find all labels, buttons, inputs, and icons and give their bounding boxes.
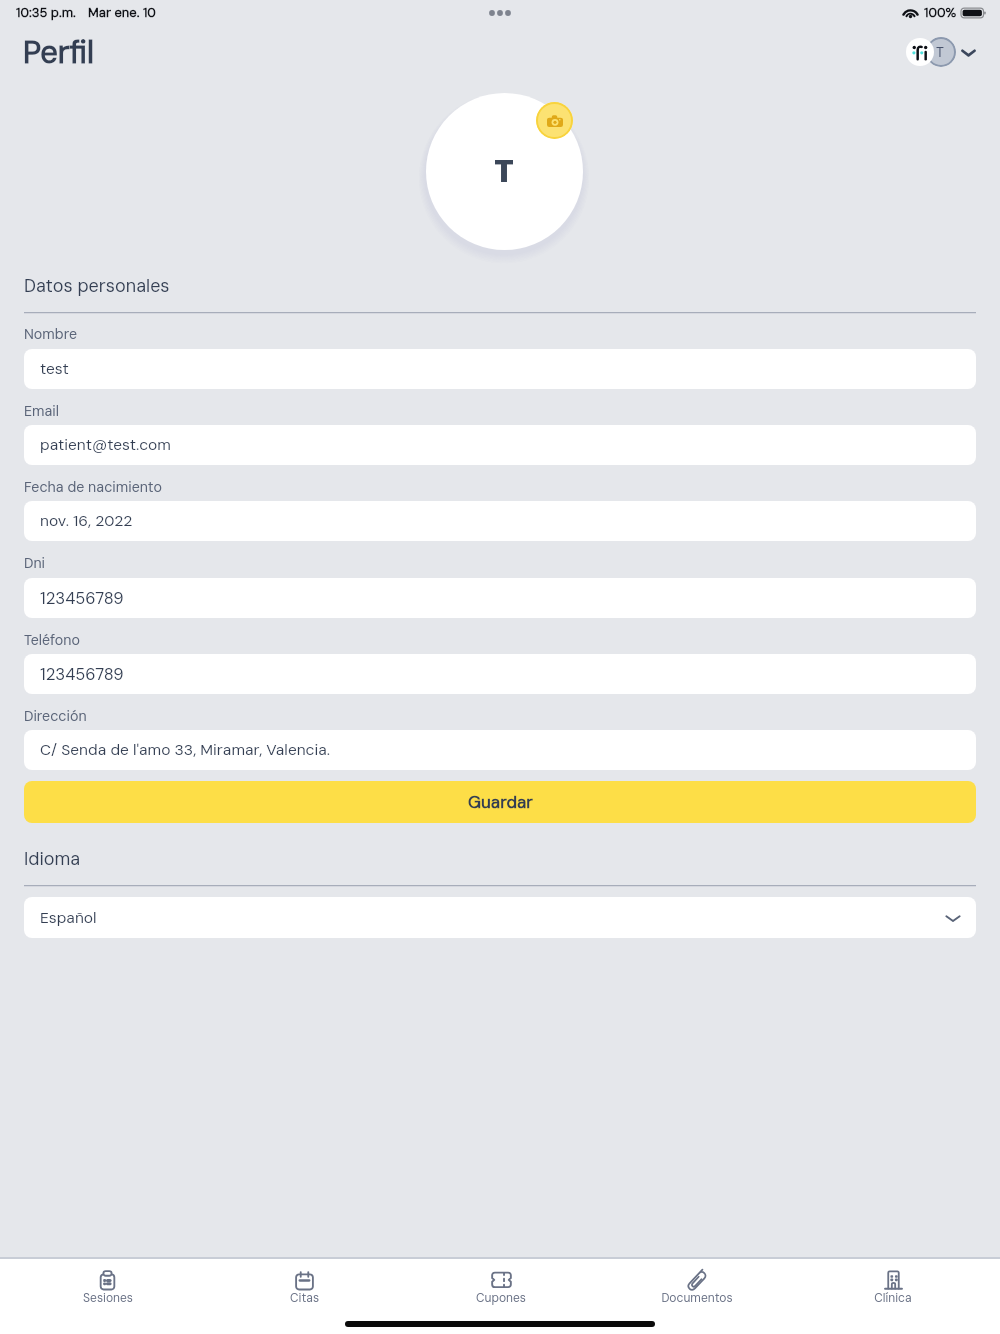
staticText: T [936, 43, 944, 61]
staticText: Clínica [874, 1290, 912, 1306]
staticText: Español [40, 908, 97, 928]
staticText: 123456789 [40, 664, 124, 685]
button[interactable]: Cuenta [906, 36, 978, 68]
staticText: Email [24, 402, 59, 420]
staticText: Documentos [661, 1290, 733, 1306]
button[interactable]: Avatar [426, 93, 583, 250]
button[interactable]: Cambiar foto [536, 102, 573, 139]
staticText: Dni [24, 554, 46, 572]
staticText: Mar ene. 10 [88, 4, 156, 21]
button[interactable]: Sesiones [9, 1259, 206, 1313]
staticText: Nombre [24, 325, 77, 343]
staticText: Idioma [24, 847, 81, 870]
staticText: C/ Senda de l'amo 33, Miramar, Valencia. [40, 740, 331, 760]
button[interactable]: patient@test.com [24, 425, 976, 465]
button[interactable]: C/ Senda de l'amo 33, Miramar, Valencia. [24, 730, 976, 770]
staticText: Dirección [24, 707, 87, 725]
button[interactable]: Documentos [599, 1259, 795, 1313]
staticText: 100% [924, 4, 957, 21]
staticText: 123456789 [40, 588, 124, 609]
staticText: Datos personales [24, 274, 170, 297]
button[interactable]: Guardar [24, 781, 976, 823]
staticText: 10:35 p.m. [16, 4, 76, 21]
staticText: Perfil [23, 32, 94, 72]
staticText: Fecha de nacimiento [24, 478, 162, 496]
button[interactable]: 123456789 [24, 578, 976, 618]
staticText: Teléfono [24, 631, 80, 649]
staticText: nov. 16, 2022 [40, 511, 133, 531]
button[interactable]: Clínica [795, 1259, 991, 1313]
staticText: patient@test.com [40, 435, 171, 455]
button[interactable]: nov. 16, 2022 [24, 501, 976, 541]
button[interactable]: 123456789 [24, 654, 976, 694]
staticText: Sesiones [83, 1290, 133, 1306]
button[interactable]: Español [24, 897, 976, 938]
staticText: Guardar [468, 791, 533, 813]
button[interactable]: Cupones [403, 1259, 599, 1313]
button[interactable]: Citas [206, 1259, 403, 1313]
staticText: Cupones [476, 1290, 526, 1306]
button[interactable]: test [24, 349, 976, 389]
staticText: test [40, 359, 69, 379]
staticText: Citas [290, 1290, 319, 1306]
